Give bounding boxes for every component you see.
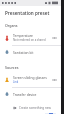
button[interactable]: Transfer device (0, 88, 61, 100)
staticText: Presentation preset (5, 10, 50, 16)
staticText: Screen sliding glasses (13, 75, 47, 79)
staticText: Temperature (13, 33, 33, 37)
staticText: Sanitation kit (13, 50, 34, 54)
staticText: Not rendered on a shared (13, 38, 46, 42)
staticText: Link (13, 80, 19, 84)
staticText: Organs (5, 23, 18, 28)
button[interactable]: Temperature (0, 30, 61, 45)
button[interactable]: More options (51, 34, 58, 41)
button[interactable]: More options (51, 76, 58, 83)
button[interactable]: Create something new (0, 103, 61, 113)
button[interactable]: Add (45, 113, 56, 114)
button[interactable]: Sanitation kit (0, 46, 61, 58)
staticText: Transfer device (13, 92, 37, 96)
button[interactable]: Screen sliding glasses (0, 72, 61, 87)
staticText: Create something new (19, 106, 51, 110)
staticText: Sources (5, 65, 19, 70)
